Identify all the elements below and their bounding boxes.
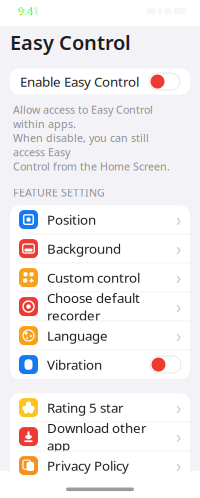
staticText: › (176, 425, 181, 448)
staticText: › (176, 295, 181, 318)
button[interactable]: Rating 5 star (10, 394, 190, 422)
staticText: › (176, 237, 181, 260)
staticText: › (176, 396, 181, 419)
staticText: › (176, 454, 181, 477)
button[interactable]: Background (10, 235, 190, 263)
button[interactable]: Vibration (10, 351, 190, 379)
staticText: Rating 5 star (47, 399, 124, 416)
staticText: Custom control (47, 269, 140, 286)
staticText: FEATURE SETTING (13, 185, 105, 200)
staticText: Choose default recorder (47, 289, 140, 324)
button[interactable]: Position (10, 206, 190, 234)
staticText: Allow access to Easy Control within apps… (13, 103, 170, 173)
button[interactable]: Privacy Policy (10, 452, 190, 480)
staticText: Language (47, 327, 108, 344)
staticText: Privacy Policy (47, 457, 129, 474)
staticText: Download other app (47, 419, 147, 454)
staticText: Easy Control (10, 29, 131, 56)
staticText: Enable Easy Control (20, 73, 139, 90)
button[interactable]: Toggle (150, 356, 181, 373)
button[interactable]: Language (10, 322, 190, 350)
staticText: Background (47, 240, 121, 257)
staticText: Position (47, 211, 96, 228)
staticText: Vibration (47, 356, 102, 373)
staticText: 9:41 (18, 4, 39, 18)
button[interactable]: Download other app (10, 423, 190, 451)
button[interactable]: Custom control (10, 264, 190, 292)
button[interactable]: Toggle (149, 73, 180, 90)
staticText: › (176, 208, 181, 231)
staticText: › (176, 266, 181, 289)
staticText: › (176, 324, 181, 347)
button[interactable]: Choose default recorder (10, 293, 190, 321)
